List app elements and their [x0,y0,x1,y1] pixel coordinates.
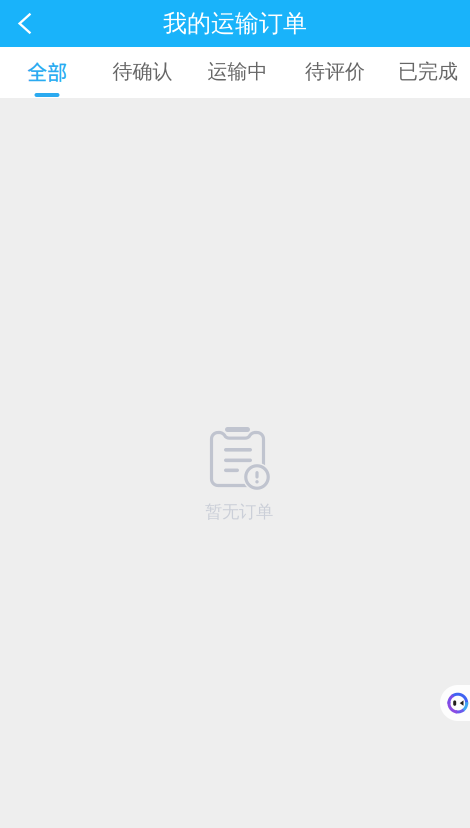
button[interactable]: Back [0,0,48,47]
button[interactable]: 已完成 [386,47,470,98]
button[interactable]: Assistant [440,685,470,721]
staticText: 已完成 [398,59,458,84]
staticText: 待评价 [305,59,365,84]
button[interactable]: 运输中 [191,47,284,98]
staticText: 暂无订单 [205,501,273,522]
staticText: 运输中 [207,59,267,84]
button[interactable]: 待评价 [284,47,386,98]
staticText: 待确认 [112,59,172,84]
staticText: 全部 [27,57,67,86]
button[interactable]: 全部 [0,47,94,98]
staticText: 我的运输订单 [163,9,307,38]
button[interactable]: 待确认 [94,47,191,98]
